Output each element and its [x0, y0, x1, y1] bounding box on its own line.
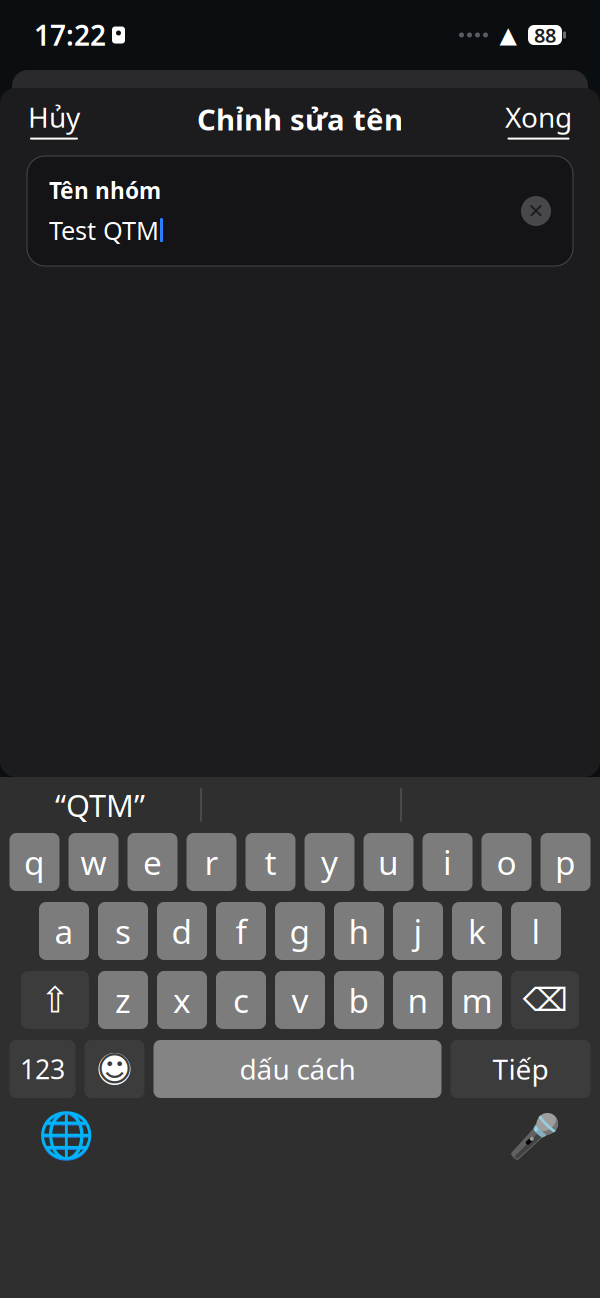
- button[interactable]: t: [245, 833, 295, 891]
- button[interactable]: a: [39, 902, 89, 960]
- button[interactable]: 123: [9, 1040, 75, 1098]
- button[interactable]: o: [481, 833, 531, 891]
- staticText: ⇧: [40, 980, 70, 1020]
- staticText: 🎤: [507, 1112, 560, 1160]
- button[interactable]: Delete: [511, 971, 579, 1029]
- staticText: p: [555, 840, 576, 884]
- button[interactable]: u: [363, 833, 413, 891]
- staticText: Test QTM: [49, 213, 159, 247]
- staticText: ⌫: [522, 982, 567, 1018]
- staticText: f: [235, 909, 246, 953]
- staticText: o: [496, 840, 516, 884]
- staticText: a: [54, 909, 73, 953]
- button[interactable]: v: [275, 971, 325, 1029]
- staticText: ✕: [527, 200, 544, 222]
- button[interactable]: s: [98, 902, 148, 960]
- button[interactable]: f: [216, 902, 266, 960]
- button[interactable]: Emoji: [84, 1040, 144, 1098]
- staticText: q: [24, 840, 45, 884]
- button[interactable]: Tên nhóm: [27, 156, 573, 266]
- staticText: x: [173, 978, 191, 1022]
- staticText: t: [264, 840, 276, 884]
- button[interactable]: z: [98, 971, 148, 1029]
- button[interactable]: w: [68, 833, 118, 891]
- staticText: u: [378, 840, 399, 884]
- button[interactable]: y: [304, 833, 354, 891]
- button[interactable]: “QTM”: [0, 777, 200, 833]
- staticText: dấu cách: [239, 1050, 355, 1088]
- staticText: Tiếp: [492, 1050, 548, 1088]
- button[interactable]: n: [393, 971, 443, 1029]
- button[interactable]: m: [452, 971, 502, 1029]
- staticText: j: [413, 909, 422, 953]
- staticText: 17:22: [34, 16, 106, 54]
- button[interactable]: p: [540, 833, 590, 891]
- button[interactable]: q: [9, 833, 59, 891]
- staticText: z: [115, 978, 131, 1022]
- staticText: d: [171, 909, 192, 953]
- button[interactable]: Shift: [21, 971, 89, 1029]
- staticText: l: [531, 909, 540, 953]
- staticText: 88: [534, 22, 556, 48]
- button[interactable]: d: [157, 902, 207, 960]
- staticText: e: [143, 840, 162, 884]
- staticText: r: [204, 840, 218, 884]
- staticText: Hủy: [28, 98, 80, 136]
- staticText: g: [289, 909, 310, 953]
- staticText: b: [348, 978, 369, 1022]
- button[interactable]: Xong: [499, 90, 578, 148]
- staticText: c: [233, 978, 249, 1022]
- button[interactable]: i: [422, 833, 472, 891]
- button[interactable]: dấu cách: [153, 1040, 441, 1098]
- button[interactable]: g: [275, 902, 325, 960]
- staticText: 🌐: [38, 1110, 94, 1162]
- staticText: n: [407, 978, 428, 1022]
- staticText: h: [348, 909, 369, 953]
- button[interactable]: x: [157, 971, 207, 1029]
- button[interactable]: c: [216, 971, 266, 1029]
- staticText: m: [461, 978, 492, 1022]
- button[interactable]: h: [334, 902, 384, 960]
- staticText: Xong: [505, 98, 572, 136]
- staticText: Tên nhóm: [49, 175, 161, 205]
- staticText: y: [321, 840, 338, 884]
- staticText: Chỉnh sửa tên: [197, 99, 403, 138]
- button[interactable]: j: [393, 902, 443, 960]
- staticText: ☺: [96, 1049, 132, 1089]
- button[interactable]: e: [127, 833, 177, 891]
- staticText: ▲: [499, 22, 516, 48]
- button[interactable]: Hủy: [22, 90, 86, 148]
- button[interactable]: Dictation: [502, 1104, 566, 1168]
- staticText: i: [443, 840, 452, 884]
- staticText: 123: [20, 1051, 65, 1087]
- staticText: s: [115, 909, 131, 953]
- button[interactable]: l: [511, 902, 561, 960]
- staticText: w: [80, 840, 106, 884]
- button[interactable]: b: [334, 971, 384, 1029]
- button[interactable]: Change keyboard language: [34, 1104, 98, 1168]
- button[interactable]: r: [186, 833, 236, 891]
- staticText: k: [468, 909, 486, 953]
- button[interactable]: Tiếp: [450, 1040, 590, 1098]
- staticText: v: [291, 978, 308, 1022]
- staticText: “QTM”: [55, 785, 145, 825]
- button[interactable]: k: [452, 902, 502, 960]
